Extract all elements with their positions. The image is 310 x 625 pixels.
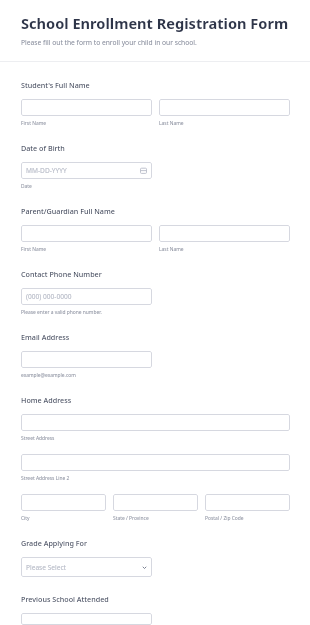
button[interactable]: Please Select [21, 557, 152, 577]
staticText: School Enrollment Registration Form [21, 13, 289, 33]
button[interactable] [21, 454, 290, 471]
button[interactable] [159, 99, 290, 116]
button[interactable]: (000) 000-0000 [21, 288, 152, 305]
button[interactable] [21, 225, 152, 242]
staticText: State / Province [113, 515, 149, 522]
other: Open grade list [142, 565, 147, 570]
staticText: example@example.com [21, 372, 76, 379]
button[interactable] [21, 99, 152, 116]
button[interactable] [159, 225, 290, 242]
staticText: Last Name [159, 246, 184, 253]
staticText: Street Address Line 2 [21, 475, 70, 482]
button[interactable] [21, 494, 106, 511]
staticText: (000) 000-0000 [26, 292, 72, 301]
staticText: Parent/Guardian Full Name [21, 206, 115, 216]
other: Pick a date [140, 167, 147, 174]
staticText: Postal / Zip Code [205, 515, 244, 522]
button[interactable] [21, 351, 152, 368]
staticText: Please Select [26, 563, 67, 572]
button[interactable] [21, 613, 152, 625]
staticText: Grade Applying For [21, 538, 88, 548]
staticText: Email Address [21, 332, 70, 342]
staticText: Contact Phone Number [21, 269, 102, 279]
staticText: Last Name [159, 120, 184, 127]
staticText: Date of Birth [21, 143, 65, 153]
staticText: City [21, 515, 30, 522]
staticText: Date [21, 183, 32, 190]
staticText: Please enter a valid phone number. [21, 309, 102, 316]
button[interactable] [21, 414, 290, 431]
staticText: MM-DD-YYYY [26, 166, 67, 175]
button[interactable] [205, 494, 290, 511]
staticText: Home Address [21, 395, 72, 405]
staticText: First Name [21, 246, 46, 253]
staticText: Please fill out the form to enroll your … [21, 38, 197, 47]
button[interactable]: MM-DD-YYYY [21, 162, 152, 179]
staticText: Previous School Attended [21, 594, 109, 604]
staticText: Street Address [21, 435, 55, 442]
staticText: First Name [21, 120, 46, 127]
staticText: Student's Full Name [21, 80, 90, 90]
button[interactable] [113, 494, 198, 511]
